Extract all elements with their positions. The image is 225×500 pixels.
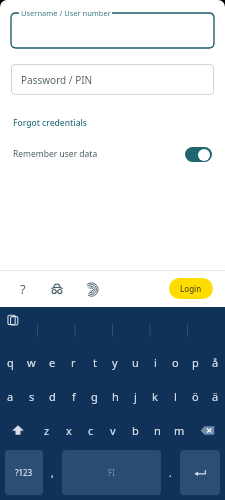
button[interactable]: t: [84, 345, 105, 379]
button[interactable]: h: [105, 379, 125, 413]
staticText: c: [88, 423, 94, 438]
button[interactable]: l: [165, 379, 185, 413]
staticText: j: [134, 389, 137, 404]
staticText: e: [49, 355, 56, 370]
staticText: x: [66, 423, 72, 438]
button[interactable]: .: [161, 450, 180, 495]
button[interactable]: e: [42, 345, 63, 379]
staticText: b: [132, 423, 139, 438]
button[interactable]: ö: [185, 379, 205, 413]
staticText: p: [192, 355, 199, 370]
button[interactable]: m: [168, 413, 190, 447]
button[interactable]: Username / User number: [11, 13, 214, 48]
button[interactable]: w: [21, 345, 42, 379]
button[interactable]: p: [185, 345, 205, 379]
button[interactable]: Shift: [0, 413, 36, 447]
staticText: Forgot credentials: [13, 117, 87, 129]
staticText: FI: [108, 467, 115, 478]
button[interactable]: k: [145, 379, 165, 413]
button[interactable]: Remember user data: [0, 142, 225, 166]
staticText: .: [169, 466, 172, 480]
button[interactable]: å: [205, 345, 225, 379]
button[interactable]: i: [145, 345, 165, 379]
staticText: l: [174, 389, 177, 404]
button[interactable]: s: [21, 379, 42, 413]
button[interactable]: c: [80, 413, 102, 447]
button[interactable]: n: [146, 413, 168, 447]
button[interactable]: Help: [12, 278, 34, 300]
staticText: z: [44, 423, 50, 438]
button[interactable]: ,: [43, 450, 62, 495]
staticText: v: [110, 423, 116, 438]
button[interactable]: Enter: [180, 450, 220, 495]
staticText: å: [212, 355, 219, 370]
button[interactable]: ä: [205, 379, 225, 413]
staticText: s: [29, 389, 35, 404]
button[interactable]: b: [124, 413, 146, 447]
staticText: ,: [51, 466, 54, 480]
staticText: u: [132, 355, 139, 370]
staticText: w: [27, 355, 36, 370]
button[interactable]: f: [63, 379, 84, 413]
staticText: ö: [192, 389, 199, 404]
button[interactable]: Forgot credentials: [13, 117, 87, 129]
staticText: i: [154, 355, 157, 370]
button[interactable]: Fingerprint login: [80, 278, 102, 300]
button[interactable]: y: [105, 345, 125, 379]
other: Remember user data toggle: [185, 147, 212, 162]
button[interactable]: Password / PIN: [11, 64, 214, 95]
button[interactable]: Clipboard: [5, 312, 21, 328]
staticText: Login: [180, 283, 202, 294]
staticText: y: [112, 355, 118, 370]
button[interactable]: ?123: [5, 450, 43, 495]
staticText: h: [112, 389, 119, 404]
staticText: ä: [212, 389, 219, 404]
button[interactable]: v: [102, 413, 124, 447]
staticText: o: [172, 355, 179, 370]
button[interactable]: Backspace: [190, 413, 225, 447]
staticText: d: [49, 389, 56, 404]
button[interactable]: d: [42, 379, 63, 413]
button[interactable]: Login: [169, 278, 213, 299]
button[interactable]: x: [58, 413, 80, 447]
button[interactable]: q: [0, 345, 21, 379]
button[interactable]: Incognito login: [46, 278, 68, 300]
button[interactable]: FI: [62, 450, 161, 495]
staticText: Username / User number: [21, 8, 111, 18]
staticText: Remember user data: [13, 148, 98, 160]
staticText: Password / PIN: [21, 73, 93, 87]
button[interactable]: u: [125, 345, 145, 379]
button[interactable]: j: [125, 379, 145, 413]
button[interactable]: g: [84, 379, 105, 413]
staticText: m: [174, 423, 185, 438]
staticText: r: [71, 355, 76, 370]
staticText: ?123: [15, 467, 33, 478]
staticText: q: [7, 355, 14, 370]
button[interactable]: r: [63, 345, 84, 379]
staticText: ?: [20, 280, 26, 298]
staticText: f: [72, 389, 76, 404]
staticText: g: [91, 389, 98, 404]
button[interactable]: z: [36, 413, 58, 447]
staticText: a: [7, 389, 14, 404]
button[interactable]: a: [0, 379, 21, 413]
staticText: t: [93, 355, 97, 370]
button[interactable]: o: [165, 345, 185, 379]
staticText: n: [154, 423, 161, 438]
staticText: k: [152, 389, 158, 404]
